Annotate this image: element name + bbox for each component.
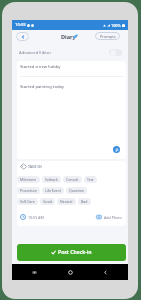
button[interactable]: Consult [63, 176, 82, 183]
button[interactable]: Good [40, 198, 55, 205]
staticText: Procedure [20, 188, 37, 193]
button[interactable]: Back [16, 32, 29, 41]
button[interactable]: Setback [42, 176, 61, 183]
staticText: Test [87, 177, 94, 182]
staticText: 10:03 [15, 22, 26, 28]
button[interactable]: Self-Care [17, 198, 38, 205]
button[interactable]: Neutral [57, 198, 76, 205]
button[interactable]: Post Check-in [17, 244, 126, 261]
staticText: 100% [111, 23, 121, 28]
button[interactable]: Home [67, 269, 74, 276]
staticText: Neutral [60, 199, 73, 204]
staticText: Setback [45, 177, 58, 182]
staticText: Milestone [20, 177, 37, 182]
button[interactable]: Toggle advanced editor [109, 49, 122, 56]
staticText: Consult [66, 177, 79, 182]
staticText: Bad [81, 199, 88, 204]
button[interactable]: Formatting options [113, 146, 120, 153]
button[interactable]: Prompts [95, 32, 120, 40]
button[interactable]: 10:55 AM [19, 214, 45, 220]
staticText: TAGS (0) [28, 164, 42, 169]
staticText: Life Event [45, 188, 61, 193]
button[interactable]: Question [66, 187, 87, 194]
staticText: Question [69, 188, 84, 193]
staticText: 10:55 AM [28, 215, 44, 220]
button[interactable]: Milestone [17, 176, 40, 183]
button[interactable]: Recent apps [31, 269, 38, 276]
staticText: Diary [61, 33, 76, 41]
staticText: Good [43, 199, 52, 204]
button[interactable]: Bad [78, 198, 91, 205]
button[interactable]: Back [102, 269, 109, 276]
staticText: Started painting today [20, 84, 64, 90]
staticText: Prompts [100, 34, 116, 39]
staticText: Add Photo [104, 215, 122, 220]
staticText: Self-Care [20, 199, 35, 204]
button[interactable]: Procedure [17, 187, 40, 194]
button[interactable]: Test [84, 176, 97, 183]
staticText: Started a new hobby [20, 64, 61, 70]
staticText: Advanced Editor [19, 50, 52, 56]
button[interactable]: Add Photo [95, 214, 123, 220]
staticText: Post Check-in [58, 249, 92, 256]
button[interactable]: Life Event [42, 187, 64, 194]
